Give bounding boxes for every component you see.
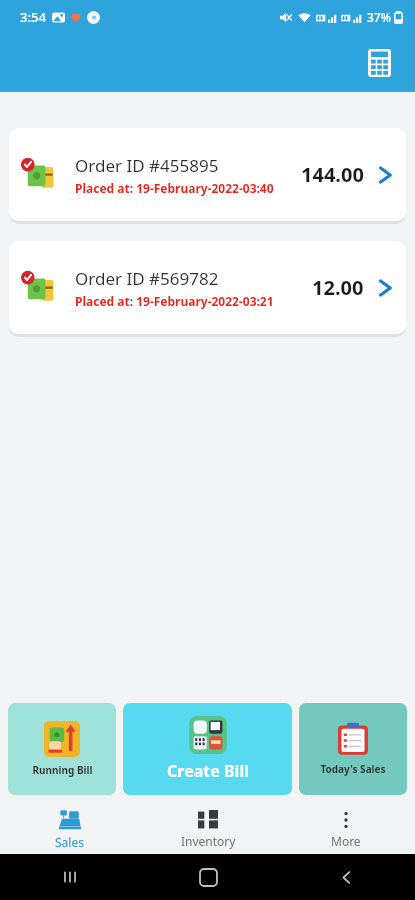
staticText: Today's Sales: [320, 762, 386, 776]
staticText: Placed at: 19-February-2022-03:21: [75, 293, 274, 309]
button[interactable]: Order ID #569782: [9, 241, 406, 334]
staticText: Placed at: 19-February-2022-03:40: [75, 180, 274, 196]
button[interactable]: Calculator: [357, 41, 401, 85]
button[interactable]: Order ID #455895: [9, 128, 406, 221]
button[interactable]: Inventory: [139, 804, 277, 854]
button[interactable]: Sales: [0, 804, 139, 854]
staticText: Order ID #455895: [75, 154, 219, 177]
staticText: 3:54: [20, 8, 46, 26]
staticText: Running Bill: [32, 763, 93, 777]
staticText: 37%: [367, 9, 391, 25]
staticText: More: [331, 833, 361, 849]
staticText: Create Bill: [167, 760, 249, 782]
button[interactable]: Running Bill: [8, 703, 116, 795]
staticText: Order ID #569782: [75, 267, 219, 290]
button[interactable]: Create Bill: [123, 703, 292, 795]
staticText: Sales: [55, 834, 84, 850]
button[interactable]: Today's Sales: [299, 703, 407, 795]
staticText: 12.00: [312, 274, 364, 301]
staticText: 144.00: [301, 161, 364, 188]
button[interactable]: More: [277, 804, 415, 854]
staticText: Inventory: [181, 833, 236, 849]
